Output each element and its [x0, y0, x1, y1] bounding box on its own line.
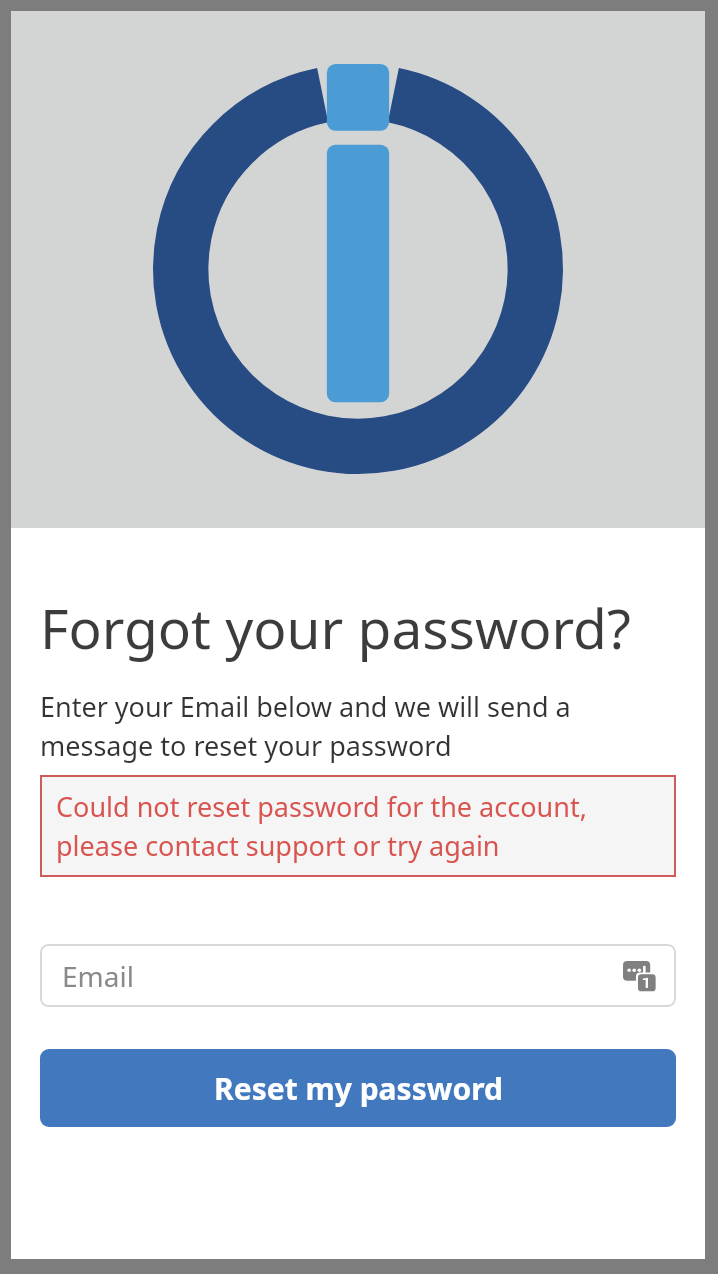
staticText: Reset my password	[214, 1068, 503, 1109]
button[interactable]: Autofill password	[620, 956, 660, 996]
staticText: Forgot your password?	[40, 590, 631, 665]
button[interactable]: Reset my password	[40, 1049, 676, 1127]
button[interactable]: Email	[40, 944, 676, 1007]
staticText: Email	[62, 957, 134, 995]
staticText: Could not reset password for the account…	[56, 788, 660, 864]
staticText: Enter your Email below and we will send …	[40, 688, 676, 764]
